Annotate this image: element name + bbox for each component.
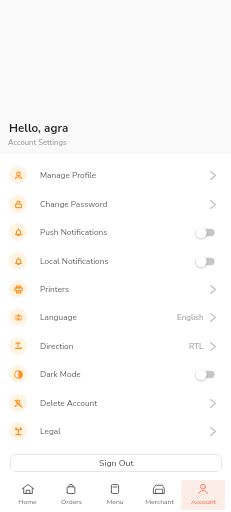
staticText: Merchant [145, 497, 174, 506]
button[interactable]: Delete Account [0, 389, 231, 417]
staticText: Legal [40, 426, 61, 437]
staticText: RTL [189, 341, 204, 352]
button[interactable]: Sign Out [10, 454, 222, 472]
button[interactable]: Push Notifications [0, 218, 231, 246]
button[interactable]: Manage Profile [0, 161, 231, 189]
button[interactable]: Toggle [196, 255, 216, 268]
staticText: Hello, agra [9, 120, 69, 136]
staticText: Printers [40, 284, 69, 295]
staticText: Direction [40, 341, 74, 352]
button[interactable]: Orders [49, 480, 93, 510]
staticText: Orders [61, 497, 82, 506]
button[interactable]: Direction [0, 332, 231, 360]
button[interactable]: Local Notifications [0, 247, 231, 275]
button[interactable]: Toggle [196, 226, 216, 239]
button[interactable]: Legal [0, 417, 231, 445]
button[interactable]: Home [6, 480, 49, 510]
button[interactable]: Dark Mode [0, 360, 231, 388]
button[interactable]: Printers [0, 275, 231, 303]
staticText: Local Notifications [40, 256, 109, 267]
staticText: Dark Mode [40, 369, 81, 380]
button[interactable]: Menu [93, 480, 137, 510]
button[interactable]: Toggle [196, 368, 216, 381]
button[interactable]: Change Password [0, 190, 231, 218]
staticText: Language [40, 312, 77, 323]
button[interactable]: Merchant [137, 480, 181, 510]
button[interactable]: Language [0, 303, 231, 331]
staticText: English [177, 312, 204, 323]
staticText: Manage Profile [40, 170, 97, 181]
staticText: Sign Out [99, 457, 134, 469]
staticText: Push Notifications [40, 227, 108, 238]
staticText: Change Password [40, 199, 108, 210]
staticText: Account [191, 497, 216, 506]
staticText: Account Settings [8, 137, 67, 148]
staticText: Delete Account [40, 398, 98, 409]
staticText: Menu [106, 497, 124, 506]
button[interactable]: Account [181, 480, 225, 510]
staticText: Home [18, 497, 37, 506]
